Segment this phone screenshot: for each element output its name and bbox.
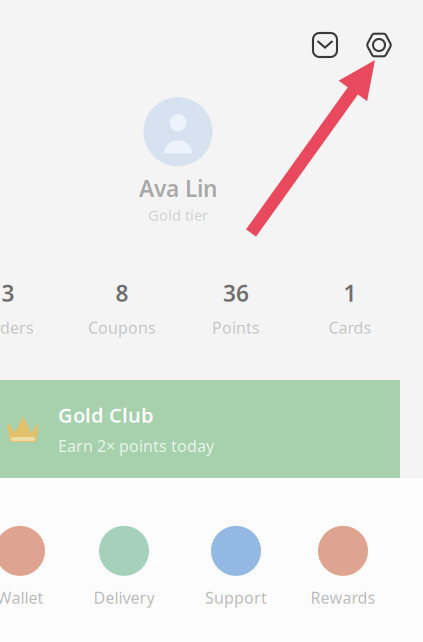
staticText: Orders xyxy=(0,317,34,338)
staticText: Ava Lin xyxy=(139,173,217,203)
staticText: Wallet xyxy=(0,587,43,608)
staticText: Earn 2× points today xyxy=(58,435,214,456)
button[interactable]: Delivery xyxy=(76,525,172,609)
button[interactable]: Ava Lin xyxy=(68,97,288,225)
button[interactable]: 8 xyxy=(76,278,168,338)
staticText: 8 xyxy=(115,278,128,308)
staticText: Gold Club xyxy=(58,402,154,428)
button[interactable]: 3 xyxy=(0,278,54,338)
button[interactable]: Wallet xyxy=(0,525,68,609)
button[interactable]: Settings xyxy=(357,23,401,67)
button[interactable]: Rewards xyxy=(295,525,391,609)
button[interactable]: Gold Club xyxy=(0,380,400,478)
staticText: Points xyxy=(212,317,260,338)
staticText: Delivery xyxy=(93,587,154,608)
staticText: Cards xyxy=(328,317,371,338)
staticText: 3 xyxy=(1,278,14,308)
staticText: Rewards xyxy=(310,587,375,608)
staticText: Gold tier xyxy=(148,205,208,225)
staticText: 36 xyxy=(223,278,249,308)
button[interactable]: Messages xyxy=(303,23,347,67)
staticText: Coupons xyxy=(88,317,156,338)
staticText: Support xyxy=(205,587,267,608)
button[interactable]: 36 xyxy=(190,278,282,338)
staticText: 1 xyxy=(343,278,356,308)
button[interactable]: Support xyxy=(188,525,284,609)
button[interactable]: 1 xyxy=(304,278,396,338)
